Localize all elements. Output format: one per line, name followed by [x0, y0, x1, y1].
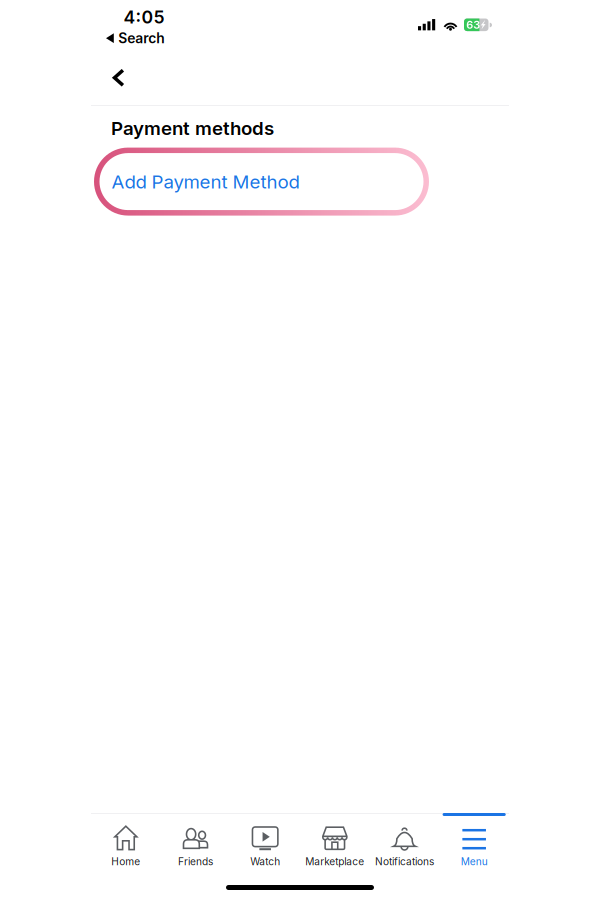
staticText: Watch — [250, 855, 280, 868]
button[interactable]: Friends — [161, 813, 230, 876]
staticText: Friends — [178, 855, 213, 868]
staticText: Payment methods — [111, 117, 274, 140]
button[interactable]: Add Payment Method — [94, 148, 429, 216]
button[interactable]: Marketplace — [300, 813, 370, 876]
staticText: Home — [111, 855, 140, 868]
staticText: Notifications — [375, 855, 434, 868]
button[interactable]: Menu — [439, 813, 509, 876]
staticText: Marketplace — [305, 855, 364, 868]
staticText: Add Payment Method — [111, 170, 299, 193]
staticText: Search — [118, 30, 164, 47]
button[interactable]: Back — [100, 59, 140, 99]
button[interactable]: Home — [91, 813, 161, 876]
button[interactable]: Notifications — [370, 813, 439, 876]
staticText: 63 — [466, 18, 480, 31]
staticText: 4:05 — [123, 6, 164, 28]
staticText: Menu — [461, 855, 488, 868]
button[interactable]: Watch — [230, 813, 300, 876]
